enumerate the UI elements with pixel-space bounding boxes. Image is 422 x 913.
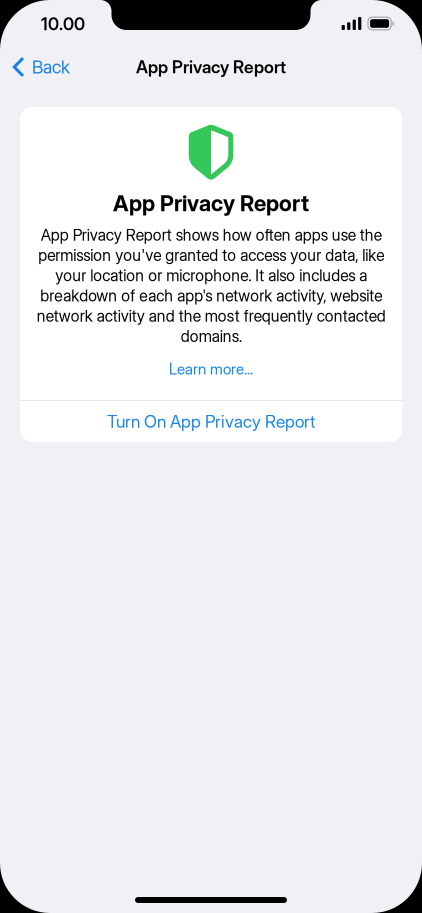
staticText: App Privacy Report <box>136 57 286 77</box>
button[interactable]: Back <box>0 44 82 90</box>
staticText: App Privacy Report shows how often apps … <box>36 225 385 346</box>
staticText: App Privacy Report <box>113 190 309 216</box>
button[interactable]: Learn more... <box>159 355 263 383</box>
button[interactable]: Turn On App Privacy Report <box>20 401 402 442</box>
staticText: Learn more... <box>169 360 253 378</box>
staticText: Turn On App Privacy Report <box>107 411 315 432</box>
staticText: Back <box>32 56 70 78</box>
staticText: 10.00 <box>41 13 85 34</box>
